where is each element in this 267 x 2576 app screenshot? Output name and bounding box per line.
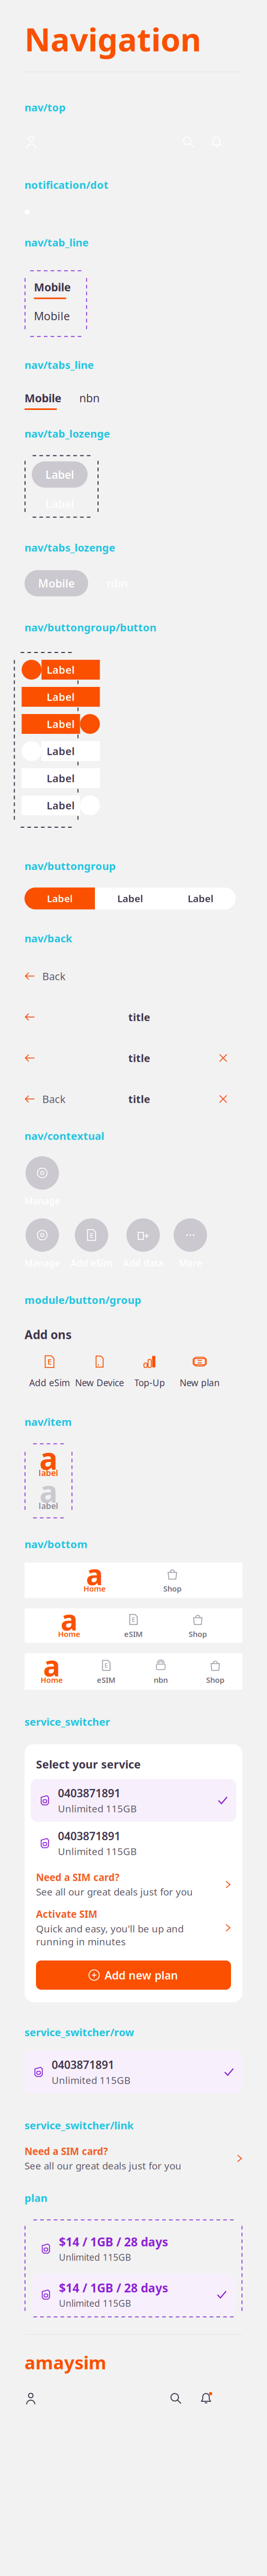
staticText: See all our great deals just for you [25,2159,181,2172]
button[interactable]: a [25,1658,79,1685]
button[interactable]: Shop [166,1612,230,1639]
button[interactable]: Mobile [34,309,70,328]
button[interactable]: 0403871891 [31,1779,236,1822]
staticText: Label [47,690,75,704]
button[interactable]: Search [182,136,195,148]
staticText: Shop [206,1675,224,1685]
staticText: Label [47,892,72,905]
staticText: Unlimited 115GB [58,1802,137,1815]
button[interactable]: Notifications [210,136,223,148]
staticText: $14 / 1GB / 28 days [59,2280,168,2296]
staticText: Unlimited 115GB [52,2074,130,2087]
button[interactable]: Shop [133,1567,211,1594]
staticText: New plan [180,1377,220,1389]
button[interactable]: Label [95,887,165,909]
staticText: Mobile [34,309,70,323]
button[interactable]: E [25,1354,75,1389]
staticText: Label [47,771,75,785]
button[interactable]: Shop [188,1658,242,1685]
staticText: service_switcher [25,1715,110,1729]
button[interactable]: Label [32,491,88,517]
button[interactable]: Label [22,714,100,734]
button[interactable]: Label [22,660,100,680]
button[interactable]: Mobile [25,390,62,410]
button[interactable]: Mobile [25,570,88,596]
button[interactable]: Account [25,135,38,149]
staticText: Need a SIM card? [36,1871,119,1884]
button[interactable]: E [101,1612,166,1639]
button[interactable]: $14 / 1GB / 28 days [32,2228,235,2269]
staticText: Add eSim [29,1377,70,1389]
button[interactable]: 0403871891 [31,1822,236,1865]
staticText: Home [41,1675,63,1685]
button[interactable]: Need a SIM card? [25,2145,242,2172]
staticText: Back [42,969,66,983]
staticText: Mobile [38,576,75,591]
staticText: service_switcher/link [25,2118,133,2132]
button[interactable]: Back [25,1012,71,1022]
staticText: See all our great deals just for you [36,1885,193,1898]
button[interactable]: 0403871891 [25,2050,242,2093]
staticText: nbn [107,576,128,591]
staticText: Add new plan [105,1968,178,1982]
staticText: notification/dot [25,178,108,192]
staticText: Label [47,663,75,677]
button[interactable]: Back [25,1092,71,1106]
staticText: service_switcher/row [25,2025,134,2039]
staticText: New Device [75,1377,124,1389]
button[interactable]: Label [25,887,95,909]
button[interactable]: Label [22,795,100,815]
staticText: title [128,1051,150,1065]
button[interactable]: Close [219,1053,228,1063]
button[interactable]: Add data [123,1218,163,1269]
button[interactable]: $14 / 1GB / 28 days [32,2274,235,2315]
staticText: E [47,1357,52,1367]
staticText: a [43,1646,60,1684]
staticText: Mobile [34,280,71,294]
staticText: Quick and easy, you'll be up and running… [36,1922,184,1948]
button[interactable]: Label [22,741,100,761]
button[interactable]: Add new plan [36,1961,231,1990]
staticText: E [90,1230,93,1240]
staticText: label [39,1467,58,1478]
button[interactable]: More [174,1218,207,1269]
staticText: eSIM [124,1629,143,1639]
button[interactable]: E [79,1658,133,1685]
button[interactable]: nbn [79,390,112,410]
button[interactable]: New Device [75,1354,125,1389]
staticText: plan [25,2191,47,2205]
button[interactable]: Need a SIM card? [36,1871,231,1898]
staticText: nav/bottom [25,1537,88,1551]
button[interactable]: Activate SIM [36,1908,231,1948]
button[interactable]: Label [165,887,236,909]
staticText: a [86,1555,103,1593]
button[interactable]: Manage [25,1218,60,1269]
staticText: Label [45,467,74,482]
button[interactable]: Label [32,461,88,488]
button[interactable]: Label [22,768,100,788]
staticText: nav/buttongroup [25,859,116,873]
button[interactable]: nbn [133,1658,188,1685]
staticText: Manage [25,1257,60,1269]
button[interactable]: a [37,1612,101,1639]
button[interactable]: Mobile [34,280,71,299]
staticText: nav/tabs_lozenge [25,541,115,555]
button[interactable]: Back [25,1053,71,1063]
button[interactable]: Search [169,2392,182,2405]
button[interactable]: Top-Up [125,1354,175,1389]
staticText: 0403871891 [58,1828,120,1843]
staticText: E [132,1615,135,1624]
staticText: Label [47,744,75,758]
button[interactable]: Account [25,2392,37,2405]
button[interactable]: Notifications [200,2392,212,2405]
button[interactable]: a [56,1567,133,1594]
button[interactable]: Close [219,1094,228,1104]
button[interactable]: Back [25,969,71,983]
button[interactable]: E [70,1218,113,1269]
staticText: Add eSim [70,1257,113,1269]
button[interactable]: New plan [175,1354,225,1389]
staticText: nav/tabs_line [25,358,94,372]
button[interactable]: Label [22,687,100,707]
button[interactable]: Manage [25,1156,60,1207]
